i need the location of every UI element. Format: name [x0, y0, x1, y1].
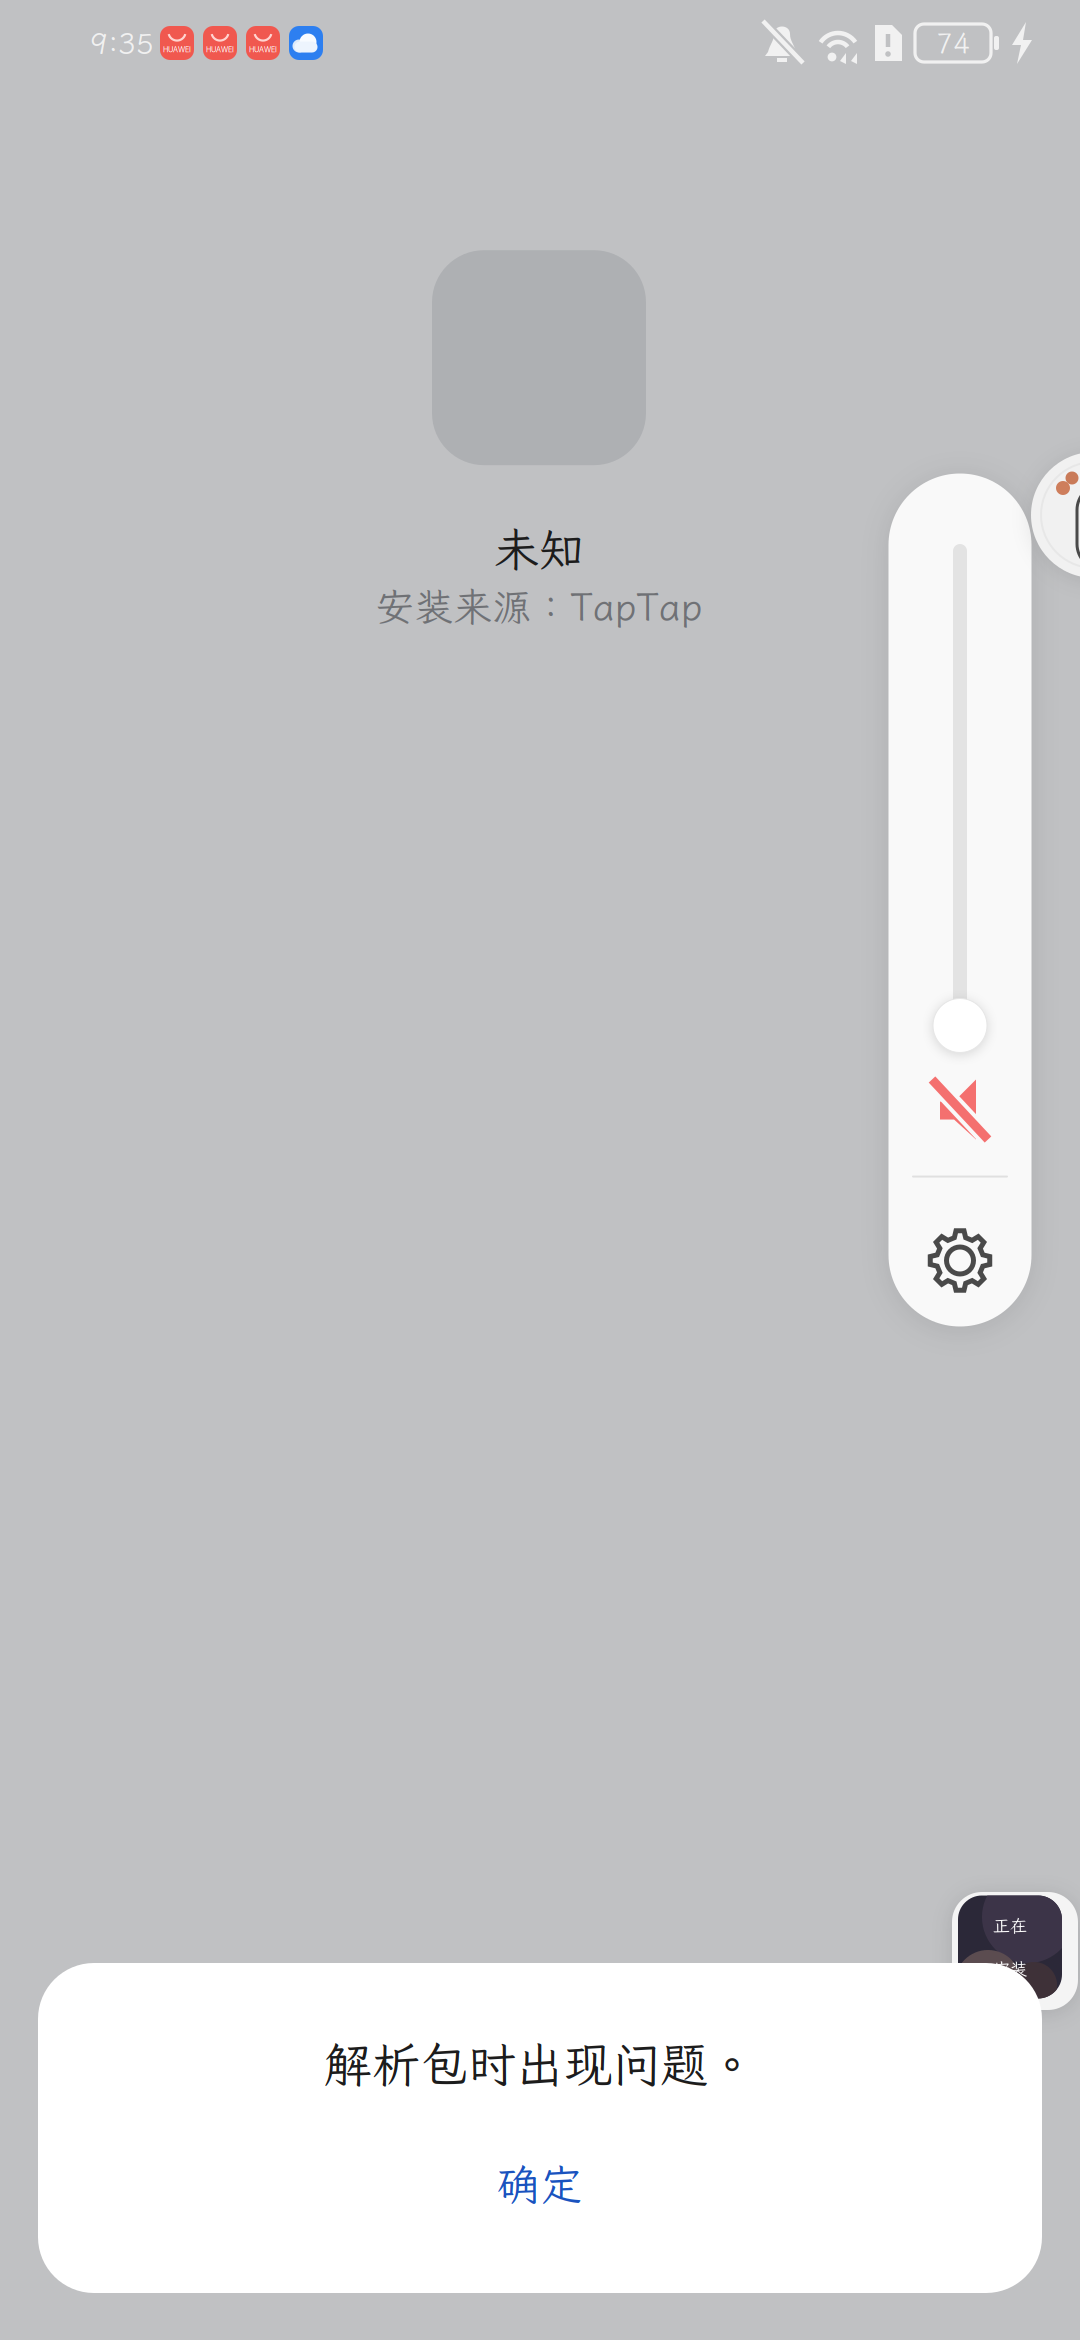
staticText: HUAWEI	[206, 45, 234, 54]
staticText: 未知	[494, 519, 584, 579]
staticText: 解析包时出现问题。	[324, 2032, 756, 2096]
staticText: 74	[936, 25, 970, 61]
staticText: 安装	[993, 1957, 1027, 1980]
button[interactable]: Assistant	[1031, 452, 1080, 578]
button[interactable]: Volume	[888, 473, 1031, 1326]
button[interactable]: Installing	[952, 1892, 1078, 2010]
staticText: HUAWEI	[163, 45, 191, 54]
staticText: HUAWEI	[249, 45, 277, 54]
button[interactable]: 确定	[38, 2134, 1042, 2234]
staticText: 正在	[993, 1914, 1027, 1937]
staticText: 9:35	[90, 24, 154, 62]
staticText: 安装来源：TapTap	[375, 581, 702, 632]
staticText: 确定	[497, 2156, 583, 2212]
